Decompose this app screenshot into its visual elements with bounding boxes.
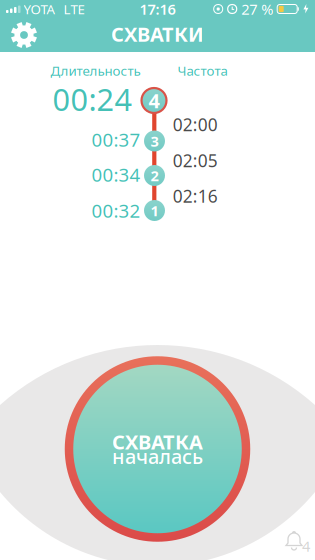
staticText: СХВАТКИ bbox=[111, 21, 204, 47]
staticText: 3 bbox=[150, 131, 158, 151]
staticText: 1 bbox=[150, 201, 158, 220]
staticText: 00:24 bbox=[52, 79, 132, 119]
button[interactable]: Notifications bbox=[280, 528, 308, 552]
staticText: 17:16 bbox=[139, 0, 175, 19]
staticText: 27 % bbox=[241, 0, 273, 19]
staticText: началась bbox=[112, 443, 203, 470]
staticText: 02:05 bbox=[173, 149, 218, 172]
button[interactable]: СХВАТКА bbox=[64, 356, 250, 542]
staticText: 4 bbox=[148, 87, 159, 114]
staticText: 00:32 bbox=[91, 198, 140, 223]
staticText: 00:37 bbox=[91, 127, 140, 152]
staticText: LTE bbox=[63, 0, 84, 18]
staticText: Длительность bbox=[50, 62, 140, 79]
staticText: 02:00 bbox=[173, 113, 218, 136]
staticText: 2 bbox=[150, 166, 158, 185]
staticText: 00:34 bbox=[91, 162, 140, 187]
staticText: Частота bbox=[177, 62, 227, 79]
staticText: 02:16 bbox=[173, 184, 218, 207]
staticText: YOTA bbox=[23, 0, 55, 18]
button[interactable]: Settings bbox=[9, 20, 39, 50]
staticText: СХВАТКА bbox=[112, 428, 203, 455]
staticText: 4 bbox=[302, 536, 310, 556]
